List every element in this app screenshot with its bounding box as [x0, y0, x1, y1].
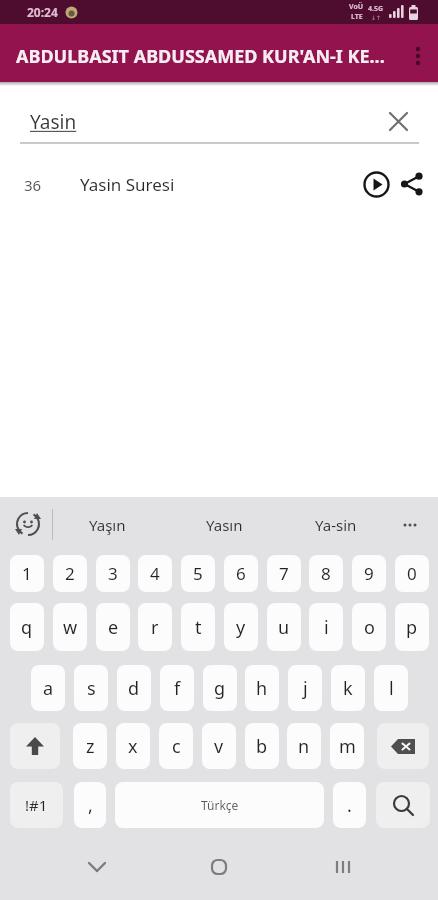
button[interactable]	[10, 723, 60, 769]
staticText: 4	[150, 562, 160, 585]
staticText: i	[324, 615, 329, 640]
staticText: e	[108, 615, 119, 640]
staticText: !#1	[25, 795, 48, 815]
button[interactable]: c	[159, 723, 193, 769]
button[interactable]: Yasın	[179, 497, 269, 552]
button[interactable]: 3	[96, 555, 130, 592]
staticText: .	[347, 793, 352, 818]
button[interactable]: 1	[10, 555, 44, 592]
staticText: 4.5G	[368, 4, 384, 14]
staticText: 7	[279, 562, 289, 585]
button[interactable]: z	[73, 723, 107, 769]
button[interactable]: 7	[267, 555, 301, 592]
button[interactable]: o	[352, 603, 386, 651]
button[interactable]: w	[53, 603, 87, 651]
button[interactable]	[377, 723, 429, 769]
button[interactable]: 4	[138, 555, 172, 592]
staticText: o	[364, 615, 375, 640]
button[interactable]: p	[395, 603, 429, 651]
staticText: p	[406, 615, 418, 640]
button[interactable]: 8	[309, 555, 343, 592]
staticText: Yasin Suresi	[80, 173, 175, 196]
button[interactable]: k	[331, 665, 365, 711]
button[interactable]: u	[267, 603, 301, 651]
button[interactable]	[199, 845, 239, 889]
staticText: 5	[193, 562, 203, 585]
staticText: m	[339, 734, 356, 759]
button[interactable]: t	[181, 603, 215, 651]
button[interactable]: s	[74, 665, 108, 711]
staticText: y	[236, 615, 246, 640]
button[interactable]	[8, 504, 48, 544]
staticText: VoÜ	[349, 2, 364, 12]
button[interactable]: Yaşın	[62, 497, 152, 552]
staticText: b	[256, 734, 268, 759]
button[interactable]: 9	[352, 555, 386, 592]
staticText: 20:24	[27, 4, 58, 20]
button[interactable]: 0	[395, 555, 429, 592]
button[interactable]: h	[245, 665, 279, 711]
button[interactable]: 36	[0, 146, 438, 214]
button[interactable]	[323, 845, 363, 889]
staticText: 3	[108, 562, 118, 585]
staticText: d	[128, 676, 140, 701]
button[interactable]: m	[330, 723, 364, 769]
button[interactable]	[77, 845, 117, 889]
button[interactable]	[378, 101, 418, 141]
staticText: u	[278, 615, 290, 640]
staticText: 8	[321, 562, 331, 585]
staticText: n	[298, 734, 310, 759]
button[interactable]: Ya-sin	[291, 497, 381, 552]
button[interactable]: r	[138, 603, 172, 651]
button[interactable]: !#1	[10, 782, 63, 828]
staticText: g	[214, 676, 226, 701]
button[interactable]: g	[203, 665, 237, 711]
staticText: f	[174, 676, 181, 701]
button[interactable]	[392, 164, 432, 204]
button[interactable]: x	[116, 723, 150, 769]
staticText: 1	[22, 562, 32, 585]
staticText: LTE	[351, 12, 363, 22]
staticText: 6	[236, 562, 246, 585]
button[interactable]: ,	[74, 782, 106, 828]
staticText: h	[256, 676, 268, 701]
staticText: q	[21, 615, 33, 640]
button[interactable]: f	[160, 665, 194, 711]
button[interactable]: q	[10, 603, 44, 651]
staticText: a	[43, 676, 54, 701]
staticText: Türkçe	[201, 797, 239, 813]
button[interactable]: i	[309, 603, 343, 651]
button[interactable]	[392, 497, 428, 552]
staticText: v	[214, 734, 224, 759]
button[interactable]: a	[31, 665, 65, 711]
button[interactable]: y	[224, 603, 258, 651]
button[interactable]: 6	[224, 555, 258, 592]
button[interactable]: 5	[181, 555, 215, 592]
button[interactable]: b	[245, 723, 279, 769]
staticText: t	[195, 615, 202, 640]
button[interactable]: 2	[53, 555, 87, 592]
button[interactable]: .	[333, 782, 366, 828]
button[interactable]: l	[374, 665, 408, 711]
staticText: r	[151, 615, 159, 640]
staticText: z	[86, 734, 95, 759]
button[interactable]	[376, 782, 430, 828]
staticText: 2	[65, 562, 75, 585]
button[interactable]	[398, 39, 438, 73]
staticText: Yasın	[206, 515, 243, 535]
button[interactable]: d	[117, 665, 151, 711]
staticText: k	[343, 676, 353, 701]
button[interactable]: j	[288, 665, 322, 711]
staticText: 9	[364, 562, 374, 585]
staticText: Ya-sin	[315, 515, 357, 535]
staticText: s	[87, 676, 96, 701]
button[interactable]: Türkçe	[115, 782, 324, 828]
button[interactable]: e	[96, 603, 130, 651]
button[interactable]	[356, 164, 396, 204]
button[interactable]: n	[287, 723, 321, 769]
staticText: Yaşın	[89, 515, 126, 535]
staticText: x	[128, 734, 138, 759]
staticText: Yasin	[30, 109, 77, 135]
button[interactable]: v	[202, 723, 236, 769]
staticText: 0	[407, 562, 417, 585]
